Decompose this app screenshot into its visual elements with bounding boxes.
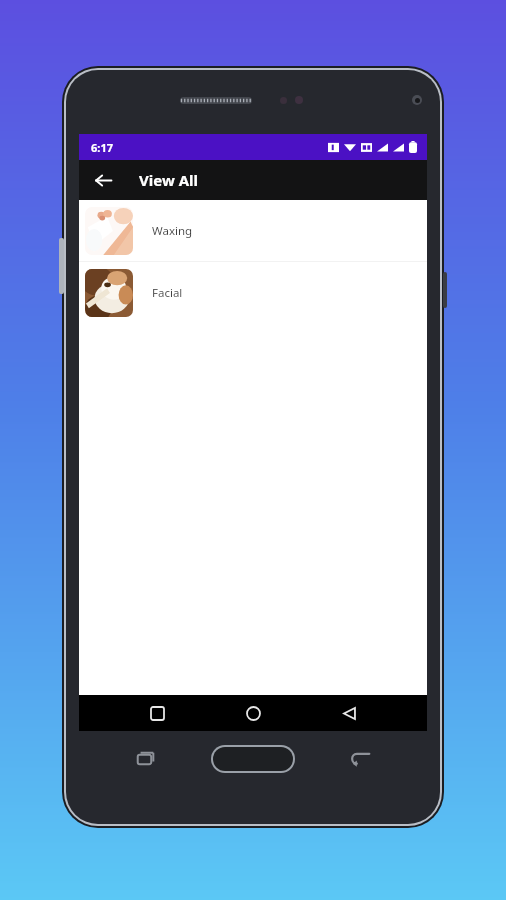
button[interactable]: Recents (139, 695, 175, 731)
staticText: Waxing (152, 223, 193, 239)
button[interactable]: Back (331, 695, 367, 731)
staticText: View All (139, 170, 198, 190)
button[interactable]: Waxing (79, 200, 427, 261)
staticText: Facial (152, 285, 183, 301)
button[interactable]: Back (87, 164, 119, 196)
button[interactable]: Home (235, 695, 271, 731)
staticText: 6:17 (91, 140, 113, 155)
button[interactable]: Facial (79, 262, 427, 323)
